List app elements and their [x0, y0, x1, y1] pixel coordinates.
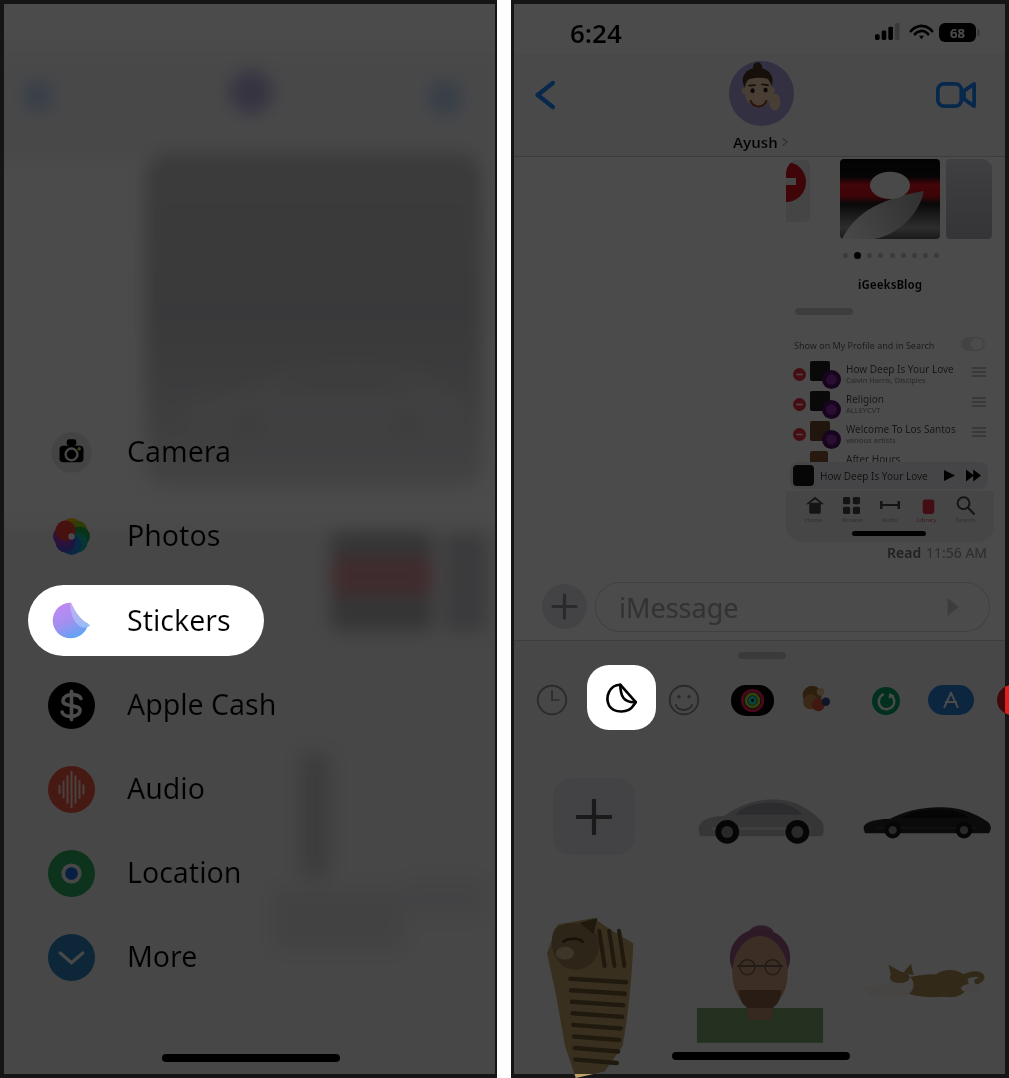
staticText: various artists: [846, 435, 896, 445]
button[interactable]: Location: [28, 838, 328, 909]
button[interactable]: More apps: [997, 685, 1009, 715]
button[interactable]: Stickers app: [587, 665, 656, 730]
staticText: How Deep Is Your Love: [846, 362, 954, 376]
button[interactable]: Silver sports car sticker: [696, 792, 826, 846]
button[interactable]: Camera: [28, 417, 328, 488]
staticText: Radio: [882, 516, 898, 524]
button[interactable]: Fitness: [731, 685, 774, 716]
button[interactable]: Back: [518, 68, 572, 122]
staticText: 6:24: [570, 15, 622, 50]
button[interactable]: Stickers: [28, 585, 264, 656]
staticText: Camera: [127, 432, 231, 471]
button[interactable]: iMessage: [595, 582, 990, 632]
button[interactable]: More: [28, 922, 328, 993]
button[interactable]: Photos: [28, 501, 328, 572]
button[interactable]: App Store: [928, 685, 974, 715]
staticText: Search: [956, 516, 975, 524]
staticText: Read: [887, 543, 922, 562]
staticText: Apple Cash: [127, 685, 277, 724]
staticText: Library: [917, 516, 937, 524]
staticText: Religion: [846, 392, 884, 406]
button[interactable]: Audio: [28, 754, 328, 825]
button[interactable]: Recently used: [530, 678, 574, 722]
button[interactable]: Stickers: [28, 585, 328, 656]
staticText: Show on My Profile and in Search: [794, 339, 935, 351]
staticText: After Hours: [846, 452, 901, 466]
button[interactable]: Screenshot attachment: [786, 158, 994, 542]
staticText: Audio: [127, 769, 205, 808]
staticText: Calvin Harris, Disciples: [846, 375, 926, 385]
staticText: 68: [950, 24, 965, 42]
button[interactable]: Create sticker: [553, 778, 635, 855]
staticText: Stickers: [127, 600, 231, 639]
staticText: Browse: [842, 516, 863, 524]
staticText: Location: [127, 853, 242, 892]
staticText: 11:56 AM: [926, 543, 988, 562]
button[interactable]: Emoji: [662, 678, 706, 722]
staticText: More: [127, 937, 198, 976]
button[interactable]: Lying cat sticker: [861, 962, 986, 1006]
staticText: ALLEYCVT: [846, 405, 881, 415]
staticText: Home: [805, 516, 823, 524]
button[interactable]: Add attachment: [542, 584, 587, 629]
staticText: How Deep Is Your Love: [820, 469, 928, 483]
button[interactable]: Portrait sticker: [697, 924, 823, 1044]
button[interactable]: Black race car sticker: [861, 802, 993, 840]
button[interactable]: Apple Cash: [28, 670, 328, 741]
staticText: iMessage: [619, 589, 739, 626]
staticText: Photos: [127, 516, 221, 555]
staticText: Stickers: [127, 601, 231, 640]
button[interactable]: FaceTime video call: [927, 66, 985, 124]
button[interactable]: App: [872, 687, 900, 715]
button[interactable]: Cat sticker: [547, 918, 637, 1078]
button[interactable]: Ayush: [723, 61, 799, 152]
staticText: Welcome To Los Santos: [846, 422, 956, 436]
staticText: Ayush: [733, 132, 778, 152]
button[interactable]: Memoji stickers: [795, 680, 837, 722]
staticText: iGeeksBlog: [786, 277, 994, 293]
